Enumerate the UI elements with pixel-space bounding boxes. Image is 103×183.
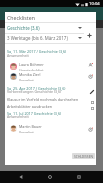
button[interactable]: Task done <box>89 99 95 105</box>
button[interactable]: Expand <box>76 34 83 41</box>
staticText: Unentschuldigt <box>19 68 44 71</box>
button[interactable]: Laura Böhmer <box>8 62 86 71</box>
staticText: SCHLIESSEN <box>74 154 93 158</box>
button[interactable]: Sa, 25. Apr 2017 / Geschichte (3,6) <box>7 86 81 91</box>
button[interactable]: 3 Werktage (bis 6. März 2017) <box>7 33 81 42</box>
staticText: Vorgebot <box>19 130 34 133</box>
button[interactable]: Recent apps <box>74 172 84 182</box>
button[interactable]: Add checklist <box>85 31 94 40</box>
staticText: Sa, 25. Apr 2017 / Geschichte (3,6) <box>7 86 66 91</box>
button[interactable]: Task done <box>89 105 95 111</box>
staticText: Laura Böhmer <box>19 62 44 67</box>
staticText: Klausur im Vorfeld nochmals durchsehen <box>7 97 79 102</box>
button[interactable]: Expand <box>76 24 83 31</box>
staticText: 10:04 <box>89 1 100 7</box>
staticText: Vorbereitungen Geschichte (3,6) <box>7 89 62 94</box>
button[interactable]: Klausur im Vorfeld nochmals durchsehen <box>7 96 85 102</box>
button[interactable]: Home <box>45 172 55 182</box>
button[interactable]: Sa, 11. Jul 2017 Geschichte (3,6) <box>7 111 81 116</box>
staticText: Martin Bauer <box>19 124 42 129</box>
button[interactable]: Geschichte (3,6) <box>7 23 81 33</box>
button[interactable]: Martin Bauer <box>8 124 86 133</box>
staticText: Anwesenheit <box>7 53 29 58</box>
staticText: Monika Zierl <box>19 72 41 77</box>
staticText: Sa, 11. Mär 2017 / Geschichte (3,6) <box>7 49 67 54</box>
button[interactable]: Edit <box>89 89 95 95</box>
staticText: Arbeitsblätter ausdrucken <box>7 104 53 109</box>
staticText: Sa, 11. Jul 2017 Geschichte (3,6) <box>7 111 62 116</box>
button[interactable]: Back <box>16 172 26 182</box>
button[interactable]: SCHLIESSEN <box>72 153 95 159</box>
button[interactable]: Monika Zierl <box>8 72 86 81</box>
staticText: 3 Werktage (bis 6. März 2017) <box>7 35 68 41</box>
staticText: Geschichte (3,6) <box>7 25 40 31</box>
button[interactable]: Arbeitsblätter ausdrucken <box>7 103 85 109</box>
button[interactable]: Sa, 11. Mär 2017 / Geschichte (3,6) <box>7 49 81 54</box>
button[interactable]: Checklisten <box>7 14 35 21</box>
button[interactable]: Time <box>87 73 94 80</box>
staticText: Vorgebot <box>19 78 34 81</box>
staticText: Checklisten <box>7 14 35 21</box>
button[interactable]: Time <box>87 126 94 133</box>
staticText: Anwesenheit <box>7 114 29 119</box>
button[interactable]: Attendance <box>87 62 94 69</box>
